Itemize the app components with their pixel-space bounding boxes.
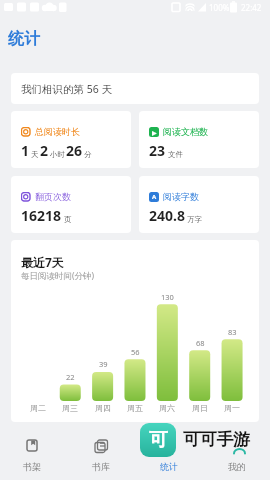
button[interactable]: ▶ <box>139 111 259 168</box>
staticText: 可 <box>149 428 168 452</box>
staticText: 我的 <box>228 461 246 472</box>
staticText: 周三 <box>62 403 78 413</box>
staticText: 100% <box>209 2 230 13</box>
staticText: 16218 <box>21 206 62 225</box>
staticText: 68 <box>196 338 205 348</box>
button[interactable]: 统计 <box>139 432 199 478</box>
staticText: 每日阅读时间(分钟) <box>21 270 95 282</box>
staticText: 26 <box>66 141 83 160</box>
staticText: 最近7天 <box>21 254 64 270</box>
staticText: 天 <box>31 150 39 159</box>
staticText: 周五 <box>127 403 143 413</box>
staticText: 翻页次数 <box>35 191 71 202</box>
button[interactable]: 我的 <box>207 432 267 478</box>
staticText: A <box>152 193 157 201</box>
staticText: 我们相识的第 56 天 <box>21 82 112 96</box>
staticText: 统计 <box>8 29 40 49</box>
staticText: 可可手游 <box>183 429 250 450</box>
staticText: 页 <box>64 215 72 224</box>
staticText: 83 <box>228 327 237 337</box>
staticText: 总阅读时长 <box>35 126 80 137</box>
staticText: 小时 <box>50 150 65 159</box>
staticText: 周二 <box>30 403 46 413</box>
staticText: 22 <box>66 372 75 382</box>
staticText: 周六 <box>159 403 175 413</box>
staticText: 240.8 <box>149 206 185 225</box>
staticText: 文件 <box>168 150 183 159</box>
staticText: 1 <box>21 141 30 160</box>
button[interactable]: 书库 <box>71 432 131 478</box>
staticText: 统计 <box>160 461 178 472</box>
staticText: 分 <box>84 150 92 159</box>
staticText: 周一 <box>224 403 240 413</box>
staticText: 22:42 <box>241 2 262 13</box>
staticText: 39 <box>99 359 108 369</box>
staticText: 书架 <box>23 461 41 472</box>
button[interactable]: A <box>139 176 259 233</box>
button[interactable] <box>11 240 259 422</box>
staticText: 阅读文档数 <box>163 126 208 137</box>
button[interactable]: 我们相识的第 56 天 <box>11 73 259 104</box>
button[interactable]: 可 <box>140 423 176 457</box>
staticText: 万字 <box>187 215 202 224</box>
staticText: 阅读字数 <box>163 191 199 202</box>
staticText: 2 <box>40 141 49 160</box>
staticText: 23 <box>149 141 166 160</box>
staticText: 56 <box>131 347 140 357</box>
staticText: ▶ <box>152 129 157 136</box>
button[interactable]: 翻页次数 <box>11 176 131 233</box>
staticText: 周日 <box>192 403 208 413</box>
button[interactable]: 总阅读时长 <box>11 111 131 168</box>
staticText: 130 <box>161 292 174 302</box>
button[interactable]: 书架 <box>2 432 62 478</box>
staticText: 周四 <box>95 403 111 413</box>
staticText: 书库 <box>92 461 110 472</box>
